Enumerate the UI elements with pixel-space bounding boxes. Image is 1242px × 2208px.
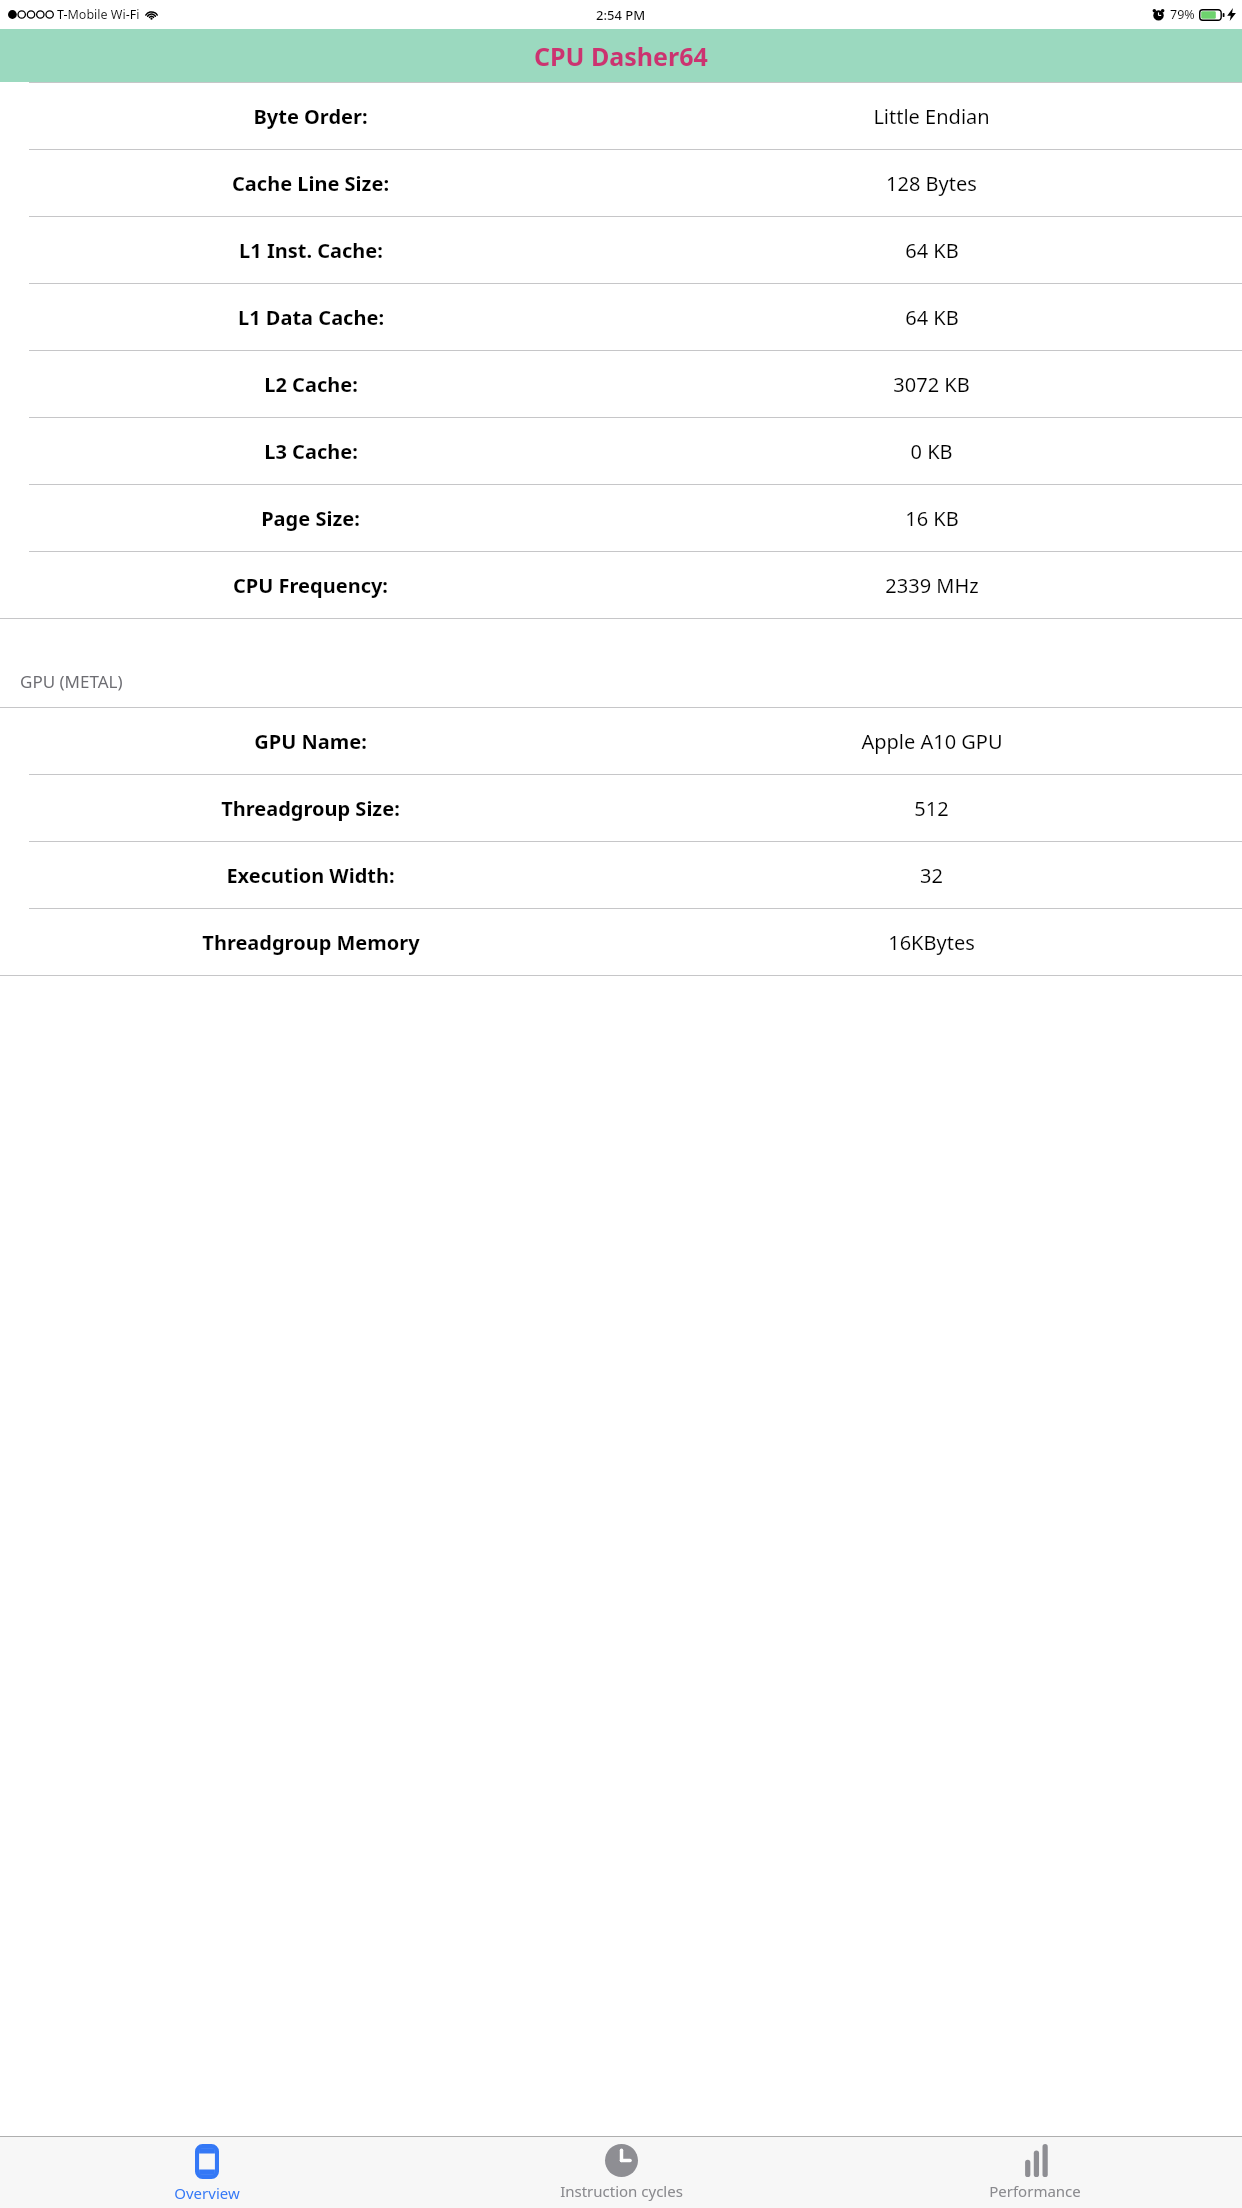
button[interactable]: Overview: [0, 2137, 414, 2208]
staticText: T-Mobile Wi-Fi: [57, 6, 140, 23]
staticText: 2:54 PM: [596, 6, 646, 24]
staticText: 128 Bytes: [886, 170, 977, 197]
staticText: L1 Inst. Cache:: [239, 237, 383, 264]
staticText: Byte Order:: [253, 103, 368, 130]
staticText: L1 Data Cache:: [238, 304, 384, 331]
button[interactable]: Cache Line Size:: [0, 150, 1242, 216]
staticText: 3072 KB: [893, 371, 970, 398]
button[interactable]: GPU Name:: [0, 708, 1242, 774]
button[interactable]: Instruction cycles: [414, 2137, 828, 2208]
button[interactable]: Threadgroup Memory: [0, 909, 1242, 975]
staticText: GPU Name:: [254, 728, 367, 755]
button[interactable]: Execution Width:: [0, 842, 1242, 908]
button[interactable]: L1 Inst. Cache:: [0, 217, 1242, 283]
button[interactable]: L2 Cache:: [0, 351, 1242, 417]
staticText: Threadgroup Size:: [221, 795, 400, 822]
staticText: Page Size:: [261, 505, 360, 532]
staticText: 79%: [1170, 6, 1195, 23]
other: Overview: [195, 2144, 219, 2179]
staticText: 32: [920, 862, 943, 889]
staticText: 2339 MHz: [885, 572, 979, 599]
staticText: Apple A10 GPU: [861, 728, 1003, 755]
button[interactable]: Byte Order:: [0, 83, 1242, 149]
button[interactable]: L3 Cache:: [0, 418, 1242, 484]
staticText: Threadgroup Memory: [202, 929, 420, 956]
staticText: CPU Frequency:: [233, 572, 388, 599]
other: Instruction cycles: [605, 2144, 638, 2177]
staticText: 512: [914, 795, 949, 822]
staticText: Little Endian: [873, 103, 990, 130]
button[interactable]: Page Size:: [0, 485, 1242, 551]
staticText: 16KBytes: [888, 929, 975, 956]
staticText: L2 Cache:: [264, 371, 358, 398]
button[interactable]: L1 Data Cache:: [0, 284, 1242, 350]
staticText: 64 KB: [905, 237, 959, 264]
button[interactable]: Performance: [828, 2137, 1242, 2208]
staticText: 0 KB: [910, 438, 953, 465]
staticText: 16 KB: [905, 505, 959, 532]
button[interactable]: Threadgroup Size:: [0, 775, 1242, 841]
staticText: L3 Cache:: [264, 438, 358, 465]
staticText: Cache Line Size:: [232, 170, 389, 197]
other: Performance: [1020, 2144, 1050, 2177]
staticText: CPU Dasher64: [534, 39, 708, 73]
staticText: Overview: [174, 2183, 240, 2203]
staticText: Performance: [989, 2181, 1081, 2201]
staticText: 64 KB: [905, 304, 959, 331]
staticText: Execution Width:: [226, 862, 395, 889]
staticText: Instruction cycles: [560, 2181, 683, 2201]
staticText: GPU (METAL): [20, 670, 123, 693]
button[interactable]: CPU Frequency:: [0, 552, 1242, 618]
